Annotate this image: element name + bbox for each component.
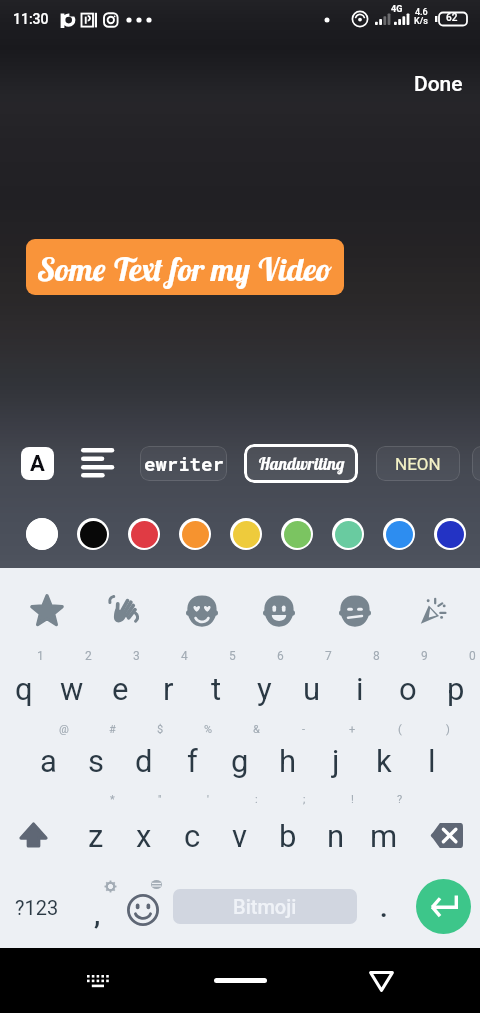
staticText: x [136,818,152,854]
staticText: 62 [446,12,458,24]
staticText: " [158,793,162,806]
button[interactable]: Bitmoji [173,889,357,924]
button[interactable]: 5 [192,642,240,714]
button[interactable]: Colour [281,518,313,550]
staticText: ewriter [144,451,224,476]
staticText: # [109,723,116,736]
button[interactable]: Emoji 2 [179,588,225,634]
staticText: 3 [133,649,140,663]
button[interactable]: ; [264,786,312,858]
staticText: e [112,671,129,707]
button[interactable]: Emoji 0 [24,588,70,634]
button[interactable]: NEON [376,446,460,481]
staticText: 4.6 [415,7,428,18]
button[interactable]: Colour [128,518,160,550]
staticText: 4G [391,4,403,15]
staticText: c [184,818,201,854]
button[interactable]: 9 [384,642,432,714]
staticText: Some Text for my Video [38,249,332,289]
button[interactable]: Colour [179,518,211,550]
staticText: 6 [277,649,284,663]
staticText: NEON [395,454,441,474]
button[interactable]: Colour [77,518,109,550]
button[interactable]: Back [359,956,403,1000]
staticText: v [232,818,248,854]
button[interactable]: Emoji 1 [101,588,147,634]
staticText: ; [303,793,306,806]
staticText: 0 [469,649,476,663]
button[interactable]: 3 [96,642,144,714]
staticText: 5 [229,649,236,663]
button[interactable]: Colour [383,518,415,550]
button[interactable]: * [72,786,120,858]
button[interactable]: 6 [240,642,288,714]
button[interactable]: Handwriting [244,444,358,483]
button[interactable]: 0 [432,642,480,714]
button[interactable]: ?123 [4,883,70,931]
button[interactable]: Emoji keyboard [120,876,166,934]
staticText: k [376,743,392,779]
button[interactable]: ) [408,714,456,786]
button[interactable]: Emoji 3 [256,588,302,634]
button[interactable]: Switch keyboard [76,959,120,1003]
staticText: w [60,671,84,707]
staticText: ? [397,793,403,806]
staticText: 8 [373,649,380,663]
staticText: 11:30 [13,11,49,27]
staticText: . [380,893,388,923]
staticText: @ [59,723,69,736]
button[interactable]: Text alignment [72,444,120,484]
button[interactable]: , [74,876,120,934]
button[interactable]: Shift [6,802,62,850]
button[interactable]: # [72,714,120,786]
button[interactable]: $ [120,714,168,786]
button[interactable]: 1 [0,642,48,714]
staticText: r [163,671,174,707]
button[interactable]: @ [24,714,72,786]
button[interactable]: Colour [26,518,58,550]
button[interactable]: Colour [230,518,262,550]
staticText: o [399,671,417,707]
button[interactable]: Home [200,954,272,1002]
staticText: 9 [421,649,428,663]
button[interactable]: Emoji 4 [332,588,378,634]
button[interactable]: Colour [332,518,364,550]
staticText: a [40,743,57,779]
button[interactable]: Colour [434,518,466,550]
button[interactable]: Done [406,66,471,103]
staticText: i [356,671,364,707]
staticText: n [327,818,345,854]
staticText: , [94,900,101,930]
staticText: t [211,671,222,707]
staticText: + [349,723,356,736]
button[interactable]: ( [360,714,408,786]
button[interactable]: 4 [144,642,192,714]
button[interactable]: + [312,714,360,786]
staticText: m [370,818,398,854]
button[interactable]: - [264,714,312,786]
button[interactable]: Enter [408,872,480,940]
button[interactable]: 7 [288,642,336,714]
staticText: y [257,671,272,707]
staticText: & [253,723,260,736]
button[interactable]: " [120,786,168,858]
button[interactable]: ? [360,786,408,858]
staticText: 2 [85,649,92,663]
button[interactable]: Some Text for my Video [26,239,344,295]
button[interactable]: Emoji 5 [409,588,455,634]
staticText: : [255,793,258,806]
button[interactable]: 2 [48,642,96,714]
staticText: j [332,743,340,779]
button[interactable]: ! [312,786,360,858]
button[interactable]: ' [168,786,216,858]
button[interactable]: 8 [336,642,384,714]
button[interactable]: ewriter [140,446,227,481]
button[interactable]: . [364,884,404,932]
button[interactable]: Backspace [419,802,475,850]
staticText: $ [157,723,164,736]
staticText: g [231,743,249,779]
button[interactable]: : [216,786,264,858]
button[interactable]: Text style [21,447,54,480]
button[interactable]: & [216,714,264,786]
button[interactable]: % [168,714,216,786]
